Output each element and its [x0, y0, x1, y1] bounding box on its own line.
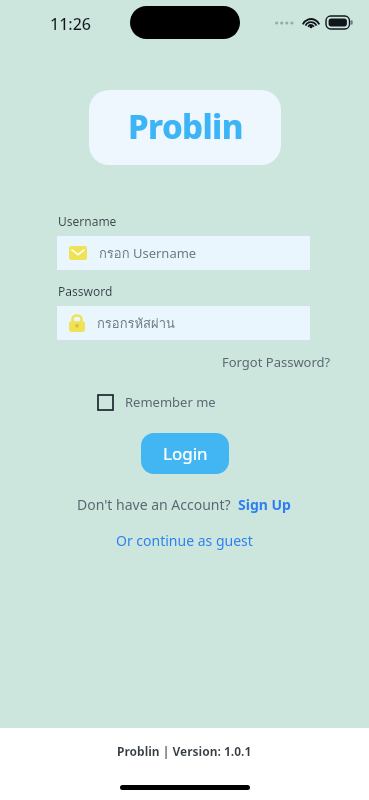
button[interactable]: Forgot Password?	[220, 351, 333, 373]
button[interactable]: Sign Up	[237, 494, 292, 515]
button[interactable]: Or continue as guest	[113, 528, 256, 553]
staticText: Login	[163, 442, 208, 465]
staticText: Problin	[128, 104, 243, 149]
staticText: Or continue as guest	[116, 531, 253, 550]
staticText: 11:26	[50, 13, 91, 35]
staticText: Remember me	[125, 393, 216, 411]
staticText: Problin | Version: 1.0.1	[117, 743, 252, 759]
staticText: กรอก Username	[99, 243, 197, 264]
button[interactable]: Password	[57, 306, 310, 340]
staticText: Sign Up	[238, 495, 291, 514]
button[interactable]: Email	[57, 236, 310, 270]
other: Password	[69, 314, 85, 332]
other: Email	[69, 246, 87, 260]
staticText: Forgot Password?	[222, 353, 331, 371]
staticText: Password	[58, 283, 113, 299]
staticText: กรอกรหัสผ่าน	[97, 313, 175, 334]
staticText: Don't have an Account?	[77, 495, 231, 514]
staticText: Username	[58, 213, 117, 229]
button[interactable]: Login	[141, 433, 229, 474]
button[interactable]: Remember me	[96, 391, 218, 413]
